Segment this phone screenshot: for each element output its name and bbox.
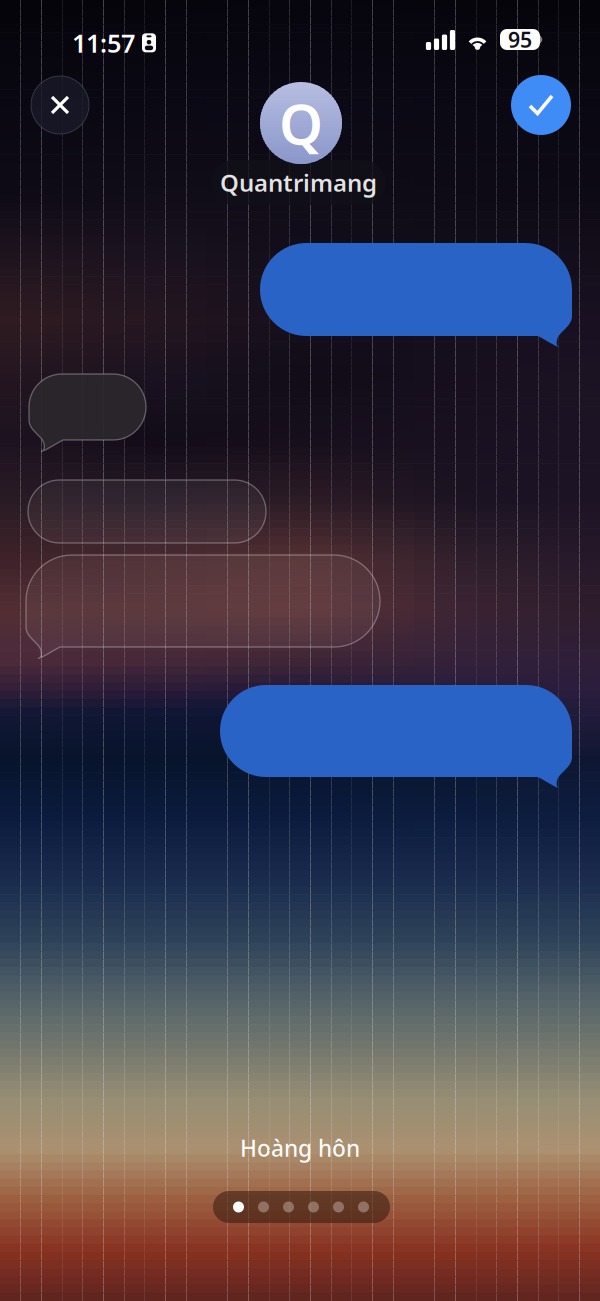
button[interactable]: Done	[511, 75, 571, 135]
staticText: Q	[279, 86, 323, 160]
button[interactable]: Close	[31, 76, 89, 134]
staticText: Quantrimang	[220, 167, 377, 198]
staticText: 11:57	[72, 26, 135, 60]
staticText: 95	[508, 25, 532, 54]
staticText: Hoàng hôn	[240, 1133, 360, 1163]
